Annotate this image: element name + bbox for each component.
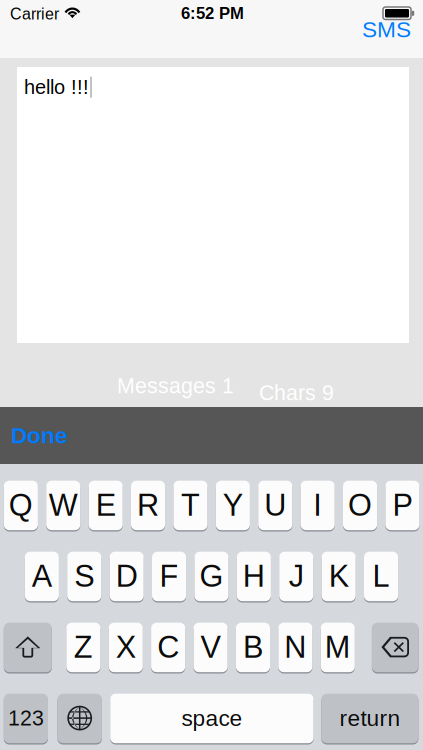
button[interactable]: R [131, 481, 165, 531]
staticText: O [348, 488, 372, 522]
staticText: X [116, 630, 136, 664]
button[interactable]: L [364, 552, 398, 602]
button[interactable]: O [343, 481, 377, 531]
staticText: D [116, 559, 138, 593]
staticText: 6:52 PM [181, 4, 244, 23]
staticText: SMS [362, 17, 411, 42]
staticText: Chars 9 [259, 381, 334, 405]
button[interactable]: C [151, 623, 185, 673]
button[interactable]: X [109, 623, 143, 673]
button[interactable]: N [278, 623, 312, 673]
staticText: L [373, 559, 390, 593]
staticText: return [339, 705, 400, 731]
staticText: hello !!! [24, 76, 89, 98]
staticText: F [160, 559, 179, 593]
button[interactable]: Delete [372, 623, 418, 673]
staticText: 123 [8, 706, 44, 730]
button[interactable]: V [193, 623, 228, 673]
staticText: Carrier [10, 5, 59, 23]
button[interactable]: Next keyboard [57, 694, 102, 744]
button[interactable]: Done [0, 407, 93, 464]
button[interactable]: E [89, 481, 123, 531]
staticText: E [96, 488, 116, 522]
button[interactable]: P [385, 481, 419, 531]
staticText: M [325, 630, 351, 664]
button[interactable]: T [173, 481, 207, 531]
staticText: Y [223, 488, 243, 522]
staticText: I [313, 488, 322, 522]
staticText: space [181, 705, 242, 731]
button[interactable]: U [258, 481, 292, 531]
staticText: N [284, 630, 306, 664]
button[interactable]: Y [216, 481, 250, 531]
button[interactable]: A [25, 552, 59, 602]
staticText: R [137, 488, 159, 522]
button[interactable]: Shift [4, 623, 52, 673]
button[interactable]: F [152, 552, 186, 602]
button[interactable]: S [67, 552, 101, 602]
staticText: H [243, 559, 265, 593]
staticText: C [157, 630, 179, 664]
button[interactable]: H [237, 552, 271, 602]
button[interactable]: K [322, 552, 356, 602]
button[interactable]: B [236, 623, 270, 673]
button[interactable]: Z [66, 623, 100, 673]
button[interactable]: I [301, 481, 335, 531]
staticText: G [199, 559, 223, 593]
button[interactable]: space [110, 694, 314, 744]
button[interactable]: M [321, 623, 355, 673]
button[interactable]: J [279, 552, 313, 602]
staticText: U [264, 488, 286, 522]
staticText: J [289, 559, 304, 593]
staticText: T [181, 488, 200, 522]
staticText: Z [74, 630, 93, 664]
staticText: W [49, 488, 78, 522]
staticText: Q [9, 488, 33, 522]
button[interactable]: 123 [4, 694, 48, 744]
staticText: A [32, 559, 52, 593]
button[interactable]: G [194, 552, 228, 602]
button[interactable]: return [321, 694, 418, 744]
staticText: K [329, 559, 349, 593]
button[interactable]: W [46, 481, 80, 531]
staticText: Done [11, 423, 68, 448]
staticText: Messages 1 [117, 374, 234, 398]
staticText: S [74, 559, 94, 593]
staticText: P [392, 488, 412, 522]
button[interactable]: Q [4, 481, 38, 531]
button[interactable]: SMS [341, 14, 423, 44]
staticText: B [243, 630, 263, 664]
staticText: V [201, 630, 221, 664]
button[interactable]: D [110, 552, 144, 602]
